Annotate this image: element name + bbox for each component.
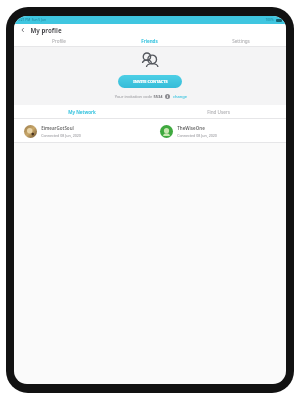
staticText: TheWiseOne: [177, 125, 205, 131]
button[interactable]: Friends: [104, 35, 195, 47]
button[interactable]: TheWiseOne: [150, 119, 286, 143]
staticText: Your invitation code: [114, 94, 153, 99]
staticText: INVITE CONTACTS: [133, 79, 168, 84]
staticText: My profile: [30, 26, 62, 34]
staticText: Settings: [232, 38, 250, 44]
staticText: Profile: [52, 38, 66, 44]
button[interactable]: My Network: [14, 105, 150, 119]
staticText: Find Users: [207, 109, 230, 115]
button[interactable]: Profile: [14, 35, 104, 47]
staticText: Connected 08 Jun, 2020: [177, 133, 217, 138]
button[interactable]: change: [173, 94, 187, 99]
staticText: i: [167, 95, 168, 99]
button[interactable]: EimearGotSoul: [14, 119, 150, 143]
staticText: EimearGotSoul: [41, 125, 74, 131]
staticText: Friends: [141, 38, 158, 44]
staticText: 100%: [265, 18, 274, 22]
button[interactable]: Info: [165, 94, 170, 99]
staticText: Connected 08 Jun, 2020: [41, 133, 81, 138]
staticText: change: [173, 94, 187, 99]
button[interactable]: INVITE CONTACTS: [118, 75, 182, 88]
button[interactable]: Back: [18, 25, 28, 35]
staticText: 5534: [153, 94, 163, 99]
staticText: My Network: [68, 109, 96, 115]
button[interactable]: Settings: [195, 35, 286, 47]
staticText: 3:21 PM Sun 5 Jun: [18, 18, 46, 22]
button[interactable]: Find Users: [150, 105, 286, 119]
other: Contacts: [139, 53, 161, 69]
